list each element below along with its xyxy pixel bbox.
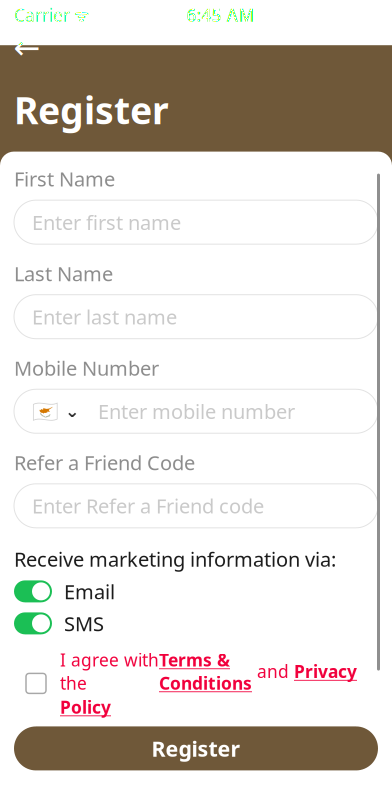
staticText: Terms & Conditions (159, 648, 252, 694)
staticText: Register (14, 85, 169, 135)
staticText: Privacy (294, 660, 357, 683)
staticText: Enter first name (32, 209, 181, 235)
button[interactable]: Back (10, 33, 44, 63)
staticText: Register (151, 734, 240, 763)
button[interactable]: Email (14, 578, 378, 604)
staticText: Carrier (14, 3, 70, 26)
button[interactable]: I agree with the (14, 648, 378, 718)
staticText: ← (13, 30, 40, 66)
staticText: Enter last name (32, 303, 177, 330)
staticText: ⌄ (65, 401, 80, 421)
staticText: Receive marketing information via: (14, 546, 336, 572)
staticText: Mobile Number (14, 355, 159, 381)
staticText: First Name (14, 166, 115, 192)
staticText: Last Name (14, 260, 113, 287)
staticText: Email (64, 578, 115, 605)
staticText: Enter Refer a Friend code (32, 492, 264, 519)
staticText: Enter mobile number (98, 398, 295, 425)
staticText: Policy (60, 695, 111, 718)
staticText: SMS (64, 610, 104, 637)
button[interactable]: Register (14, 726, 378, 770)
staticText: 🇨🇾 (32, 399, 59, 423)
button[interactable]: Select country code (32, 399, 80, 423)
staticText: ᯤ (70, 4, 89, 26)
staticText: 6:45 AM (186, 3, 254, 26)
staticText: Refer a Friend Code (14, 449, 195, 476)
staticText: I agree with the (60, 648, 159, 694)
button[interactable]: SMS (14, 610, 378, 636)
staticText: and (252, 660, 294, 683)
